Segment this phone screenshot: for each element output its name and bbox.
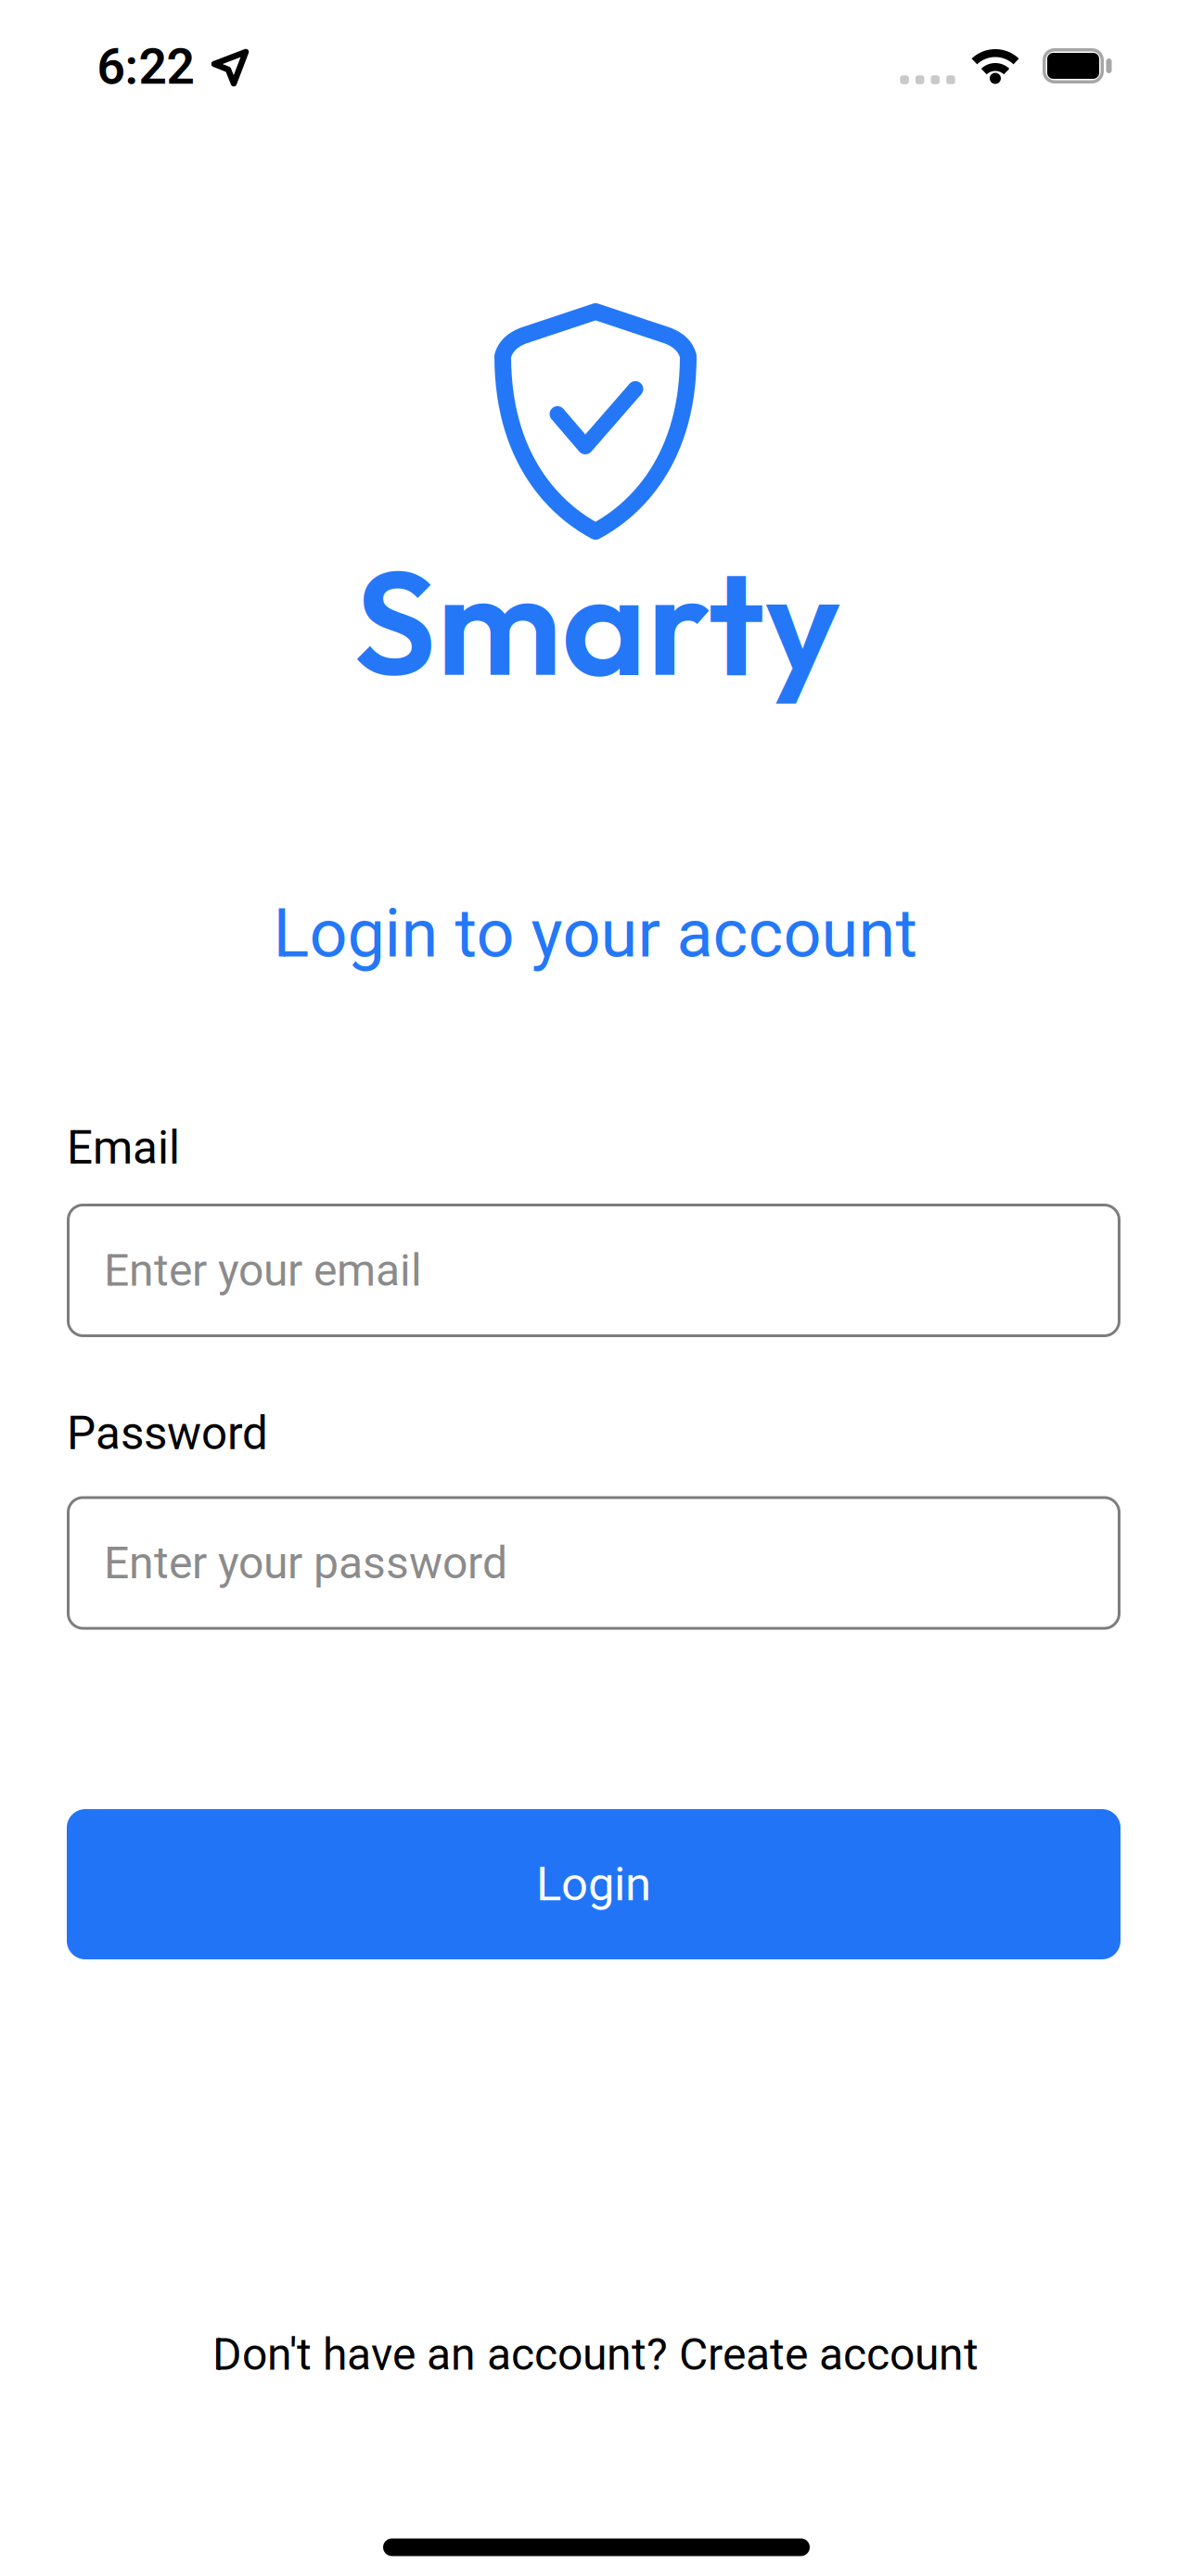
staticText: Password bbox=[67, 1407, 268, 1460]
button[interactable]: Enter your email bbox=[67, 1204, 1121, 1337]
staticText: 6:22 bbox=[97, 38, 194, 96]
button[interactable]: Don't have an account? Create account bbox=[212, 2328, 979, 2380]
staticText: Enter your password bbox=[104, 1537, 507, 1589]
button[interactable]: Enter your password bbox=[67, 1496, 1121, 1630]
staticText: Don't have an account? Create account bbox=[212, 2328, 979, 2380]
staticText: Login to your account bbox=[273, 895, 918, 973]
button[interactable]: Login bbox=[67, 1809, 1121, 1959]
staticText: Email bbox=[67, 1121, 180, 1175]
staticText: Login bbox=[536, 1857, 651, 1912]
staticText: Enter your email bbox=[104, 1244, 422, 1296]
staticText: Smarty bbox=[354, 530, 841, 712]
